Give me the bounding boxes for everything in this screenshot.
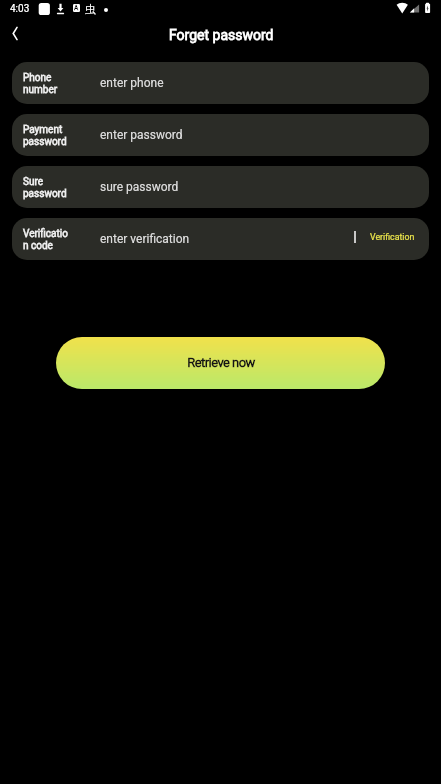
button[interactable]: Back [0, 16, 34, 50]
button[interactable]: Payment password [12, 114, 429, 156]
staticText: Verification [370, 232, 415, 242]
staticText: A [74, 4, 79, 12]
button[interactable]: Retrieve now [56, 337, 385, 389]
button[interactable]: Phone number [12, 62, 429, 104]
staticText: enter password [100, 128, 429, 142]
staticText: Forget password [169, 27, 274, 43]
staticText: 4:03 [10, 3, 30, 15]
staticText: sure password [100, 180, 429, 194]
staticText: Sure password [23, 176, 67, 200]
staticText: enter phone [100, 76, 429, 90]
button[interactable]: Verification [356, 218, 429, 260]
button[interactable]: Verificatio n code [12, 218, 429, 260]
staticText: Phone number [23, 72, 58, 96]
staticText: enter verification [100, 232, 354, 246]
staticText: Payment password [23, 124, 67, 148]
staticText: Retrieve now [187, 355, 255, 370]
button[interactable]: Sure password [12, 166, 429, 208]
staticText: Verificatio n code [23, 228, 68, 252]
staticText: 虫 [85, 2, 96, 16]
